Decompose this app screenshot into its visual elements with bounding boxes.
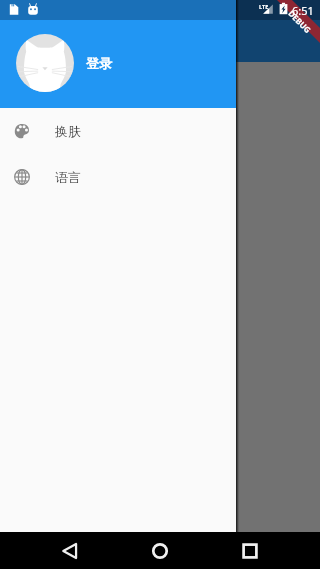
staticText: 6:51: [292, 3, 314, 18]
staticText: 登录: [86, 55, 112, 71]
button[interactable]: 登录: [0, 0, 236, 108]
staticText: 换肤: [55, 123, 81, 139]
button[interactable]: 语言: [0, 154, 236, 200]
staticText: LTE: [259, 3, 269, 10]
button[interactable]: Home: [141, 532, 178, 569]
button[interactable]: Recents: [231, 532, 268, 569]
button[interactable]: Back: [51, 532, 88, 569]
staticText: DEBUG: [286, 8, 314, 35]
staticText: 语言: [55, 169, 81, 185]
button[interactable]: 换肤: [0, 108, 236, 154]
